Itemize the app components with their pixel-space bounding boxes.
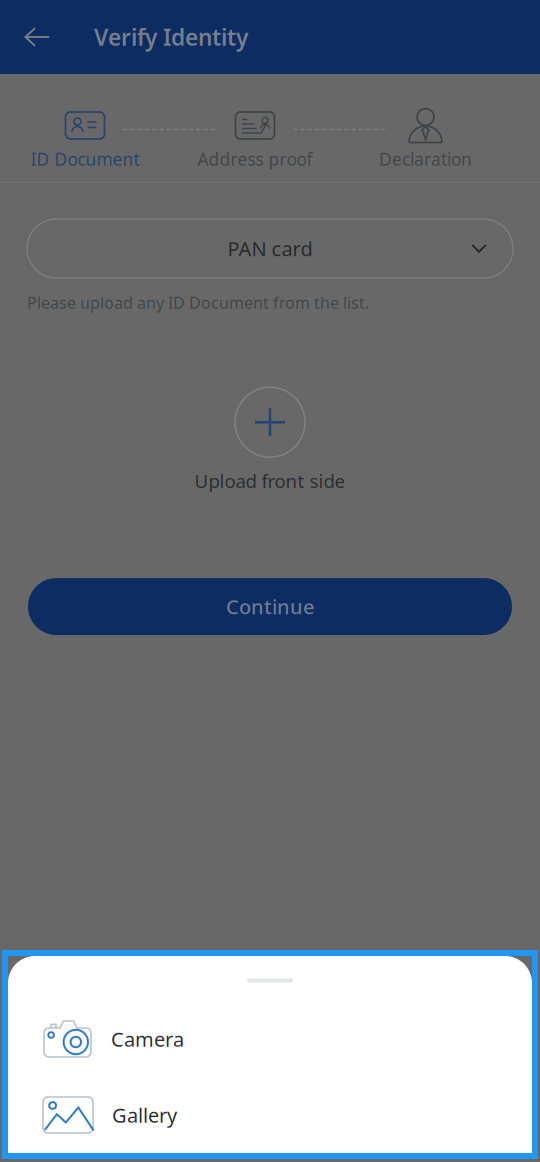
button[interactable]: Continue: [28, 578, 512, 635]
staticText: ID Document: [30, 147, 139, 170]
staticText: Continue: [226, 593, 314, 620]
staticText: Upload front side: [194, 468, 345, 493]
staticText: Please upload any ID Document from the l…: [27, 292, 369, 313]
button[interactable]: Back: [0, 0, 74, 74]
button[interactable]: PAN card: [27, 219, 513, 278]
staticText: Gallery: [112, 1102, 177, 1128]
button[interactable]: Upload front side: [194, 387, 345, 493]
button[interactable]: Gallery: [8, 1078, 532, 1151]
staticText: Verify Identity: [94, 22, 248, 52]
button[interactable]: Camera: [8, 1002, 532, 1075]
staticText: Camera: [111, 1026, 184, 1052]
staticText: Declaration: [379, 147, 472, 170]
staticText: Address proof: [197, 147, 312, 170]
staticText: PAN card: [227, 235, 312, 262]
